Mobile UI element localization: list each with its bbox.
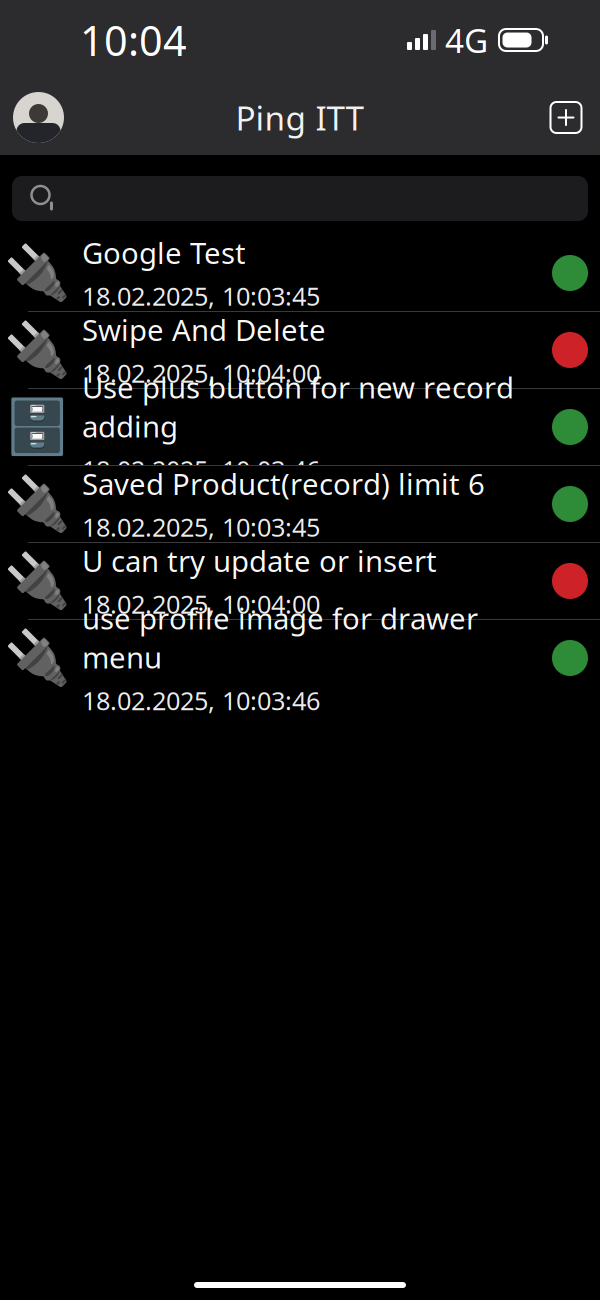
button[interactable]: 🔌 — [0, 543, 600, 619]
button[interactable]: Add — [543, 94, 589, 140]
staticText: Google Test — [82, 233, 246, 272]
staticText: 18.02.2025, 10:04:00 — [82, 356, 320, 390]
staticText: 🔌 — [4, 550, 70, 611]
staticText: Ping ITT — [235, 95, 364, 140]
staticText: 18.02.2025, 10:04:00 — [82, 587, 320, 621]
button[interactable]: 🗄️ — [0, 389, 600, 465]
staticText: 🔌 — [4, 627, 70, 688]
button[interactable]: 🔌 — [0, 620, 600, 696]
staticText: use profile image for drawer menu — [82, 599, 478, 677]
button[interactable]: Profile — [13, 92, 64, 143]
staticText: 18.02.2025, 10:03:45 — [82, 510, 320, 544]
staticText: 18.02.2025, 10:03:46 — [82, 684, 320, 717]
staticText: 🔌 — [4, 319, 70, 380]
staticText: 🔌 — [4, 242, 70, 303]
button[interactable]: 🔌 — [0, 235, 600, 311]
staticText: 4G — [445, 18, 488, 62]
staticText: 18.02.2025, 10:03:45 — [82, 279, 320, 313]
button[interactable]: 🔌 — [0, 312, 600, 388]
button[interactable]: Search — [12, 176, 588, 221]
staticText: 18.02.2025, 10:03:46 — [82, 453, 320, 486]
staticText: Swipe And Delete — [82, 310, 326, 349]
staticText: 10:04 — [80, 13, 187, 67]
button[interactable]: 🔌 — [0, 466, 600, 542]
staticText: Use plus button for new record adding — [82, 368, 514, 446]
staticText: U can try update or insert — [82, 541, 437, 580]
staticText: 🔌 — [4, 473, 70, 534]
staticText: Saved Product(record) limit 6 — [82, 464, 485, 503]
staticText: 🗄️ — [4, 396, 70, 457]
